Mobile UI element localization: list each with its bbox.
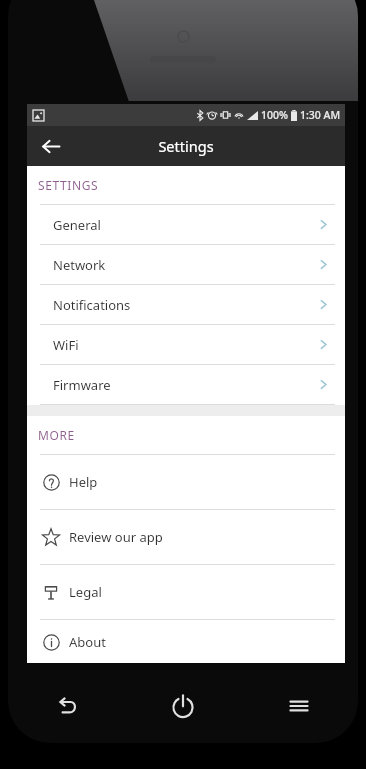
button[interactable]: Network (27, 245, 345, 284)
button[interactable]: Firmware (27, 365, 345, 404)
button[interactable]: Help (27, 455, 345, 509)
staticText: 1:30 AM (300, 108, 341, 122)
button[interactable]: Menu (282, 689, 316, 723)
staticText: Settings (158, 136, 214, 156)
staticText: Legal (69, 583, 102, 601)
button[interactable]: General (27, 205, 345, 244)
button[interactable]: About (27, 620, 345, 663)
staticText: General (53, 216, 318, 234)
button[interactable]: WiFi (27, 325, 345, 364)
button[interactable]: Navigate up (33, 128, 69, 164)
staticText: Firmware (53, 376, 318, 394)
button[interactable]: Notifications (27, 285, 345, 324)
staticText: Help (69, 473, 98, 491)
button[interactable]: Legal (27, 565, 345, 619)
button[interactable]: Power (164, 687, 202, 725)
button[interactable]: Back (50, 689, 84, 723)
staticText: Notifications (53, 296, 318, 314)
staticText: About (69, 633, 106, 651)
staticText: WiFi (53, 336, 318, 354)
staticText: SETTINGS (38, 177, 99, 193)
button[interactable]: Review our app (27, 510, 345, 564)
staticText: Review our app (69, 528, 163, 546)
staticText: 100% (261, 108, 288, 122)
staticText: MORE (38, 427, 75, 443)
staticText: Network (53, 256, 318, 274)
